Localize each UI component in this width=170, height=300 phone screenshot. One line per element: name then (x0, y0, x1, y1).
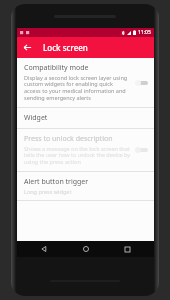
button[interactable]: Widget (17, 108, 154, 128)
staticText: 11:05 (138, 29, 151, 36)
staticText: Lock screen (43, 42, 88, 53)
staticText: Shows a message on the lock screen that … (24, 145, 131, 166)
button[interactable]: Alert button trigger (17, 172, 154, 200)
staticText: Widget (24, 113, 48, 123)
staticText: Long press widget (24, 188, 72, 195)
button[interactable]: Recents (112, 241, 142, 257)
staticText: Press to unlock description (24, 134, 113, 144)
button[interactable]: Toggle Compatibility mode (135, 78, 149, 88)
button[interactable]: Toggle Press to unlock description (135, 145, 149, 155)
staticText: Display a second lock screen layer using… (24, 74, 131, 102)
button[interactable]: Home (71, 241, 101, 257)
button[interactable]: Back (17, 37, 38, 58)
staticText: Alert button trigger (24, 177, 89, 187)
staticText: Compatibility mode (24, 63, 89, 73)
button[interactable]: Press to unlock description (17, 129, 154, 171)
button[interactable]: Back (29, 241, 59, 257)
button[interactable]: Compatibility mode (17, 58, 154, 107)
